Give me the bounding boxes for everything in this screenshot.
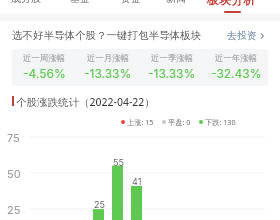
staticText: 新闻 <box>166 0 186 5</box>
button[interactable]: 近一周涨幅 <box>12 49 76 86</box>
staticText: 上涨: 15 <box>127 117 154 127</box>
staticText: 基金 <box>70 0 90 5</box>
staticText: -13.33% <box>84 66 132 81</box>
staticText: 板块分析 <box>207 0 255 7</box>
button[interactable]: 近一季涨幅 <box>140 49 204 86</box>
staticText: 近一季涨幅 <box>151 53 193 64</box>
staticText: -13.33% <box>148 66 196 81</box>
button[interactable]: 近一月涨幅 <box>76 49 140 86</box>
staticText: 个股涨跌统计（2022-04-22） <box>16 95 155 109</box>
staticText: 55 <box>113 157 124 168</box>
button[interactable]: 板块分析 <box>205 0 257 7</box>
button[interactable]: 新闻 <box>151 0 201 5</box>
staticText: 选不好半导体个股？一键打包半导体板块 <box>12 29 201 42</box>
button[interactable]: 资金 <box>106 0 156 5</box>
button[interactable]: 成分股 <box>1 0 51 5</box>
staticText: 成分股 <box>11 0 41 5</box>
button[interactable]: 近一年涨幅 <box>204 49 268 86</box>
staticText: 25 <box>94 199 105 210</box>
staticText: 下跌: 130 <box>205 117 236 127</box>
staticText: -32.43% <box>211 66 262 81</box>
staticText: 41 <box>132 176 142 187</box>
staticText: 去投资 <box>227 29 257 42</box>
staticText: 25 <box>7 203 21 216</box>
staticText: 近一年涨幅 <box>215 53 257 64</box>
staticText: 平盘: 0 <box>168 117 191 127</box>
staticText: -4.56% <box>23 66 66 81</box>
staticText: 50 <box>7 167 21 180</box>
staticText: 75 <box>7 131 20 144</box>
staticText: 资金 <box>121 0 141 5</box>
button[interactable]: 基金 <box>55 0 105 5</box>
staticText: 近一月涨幅 <box>87 53 129 64</box>
button[interactable]: 去投资 <box>227 29 266 42</box>
staticText: 近一周涨幅 <box>23 53 65 64</box>
